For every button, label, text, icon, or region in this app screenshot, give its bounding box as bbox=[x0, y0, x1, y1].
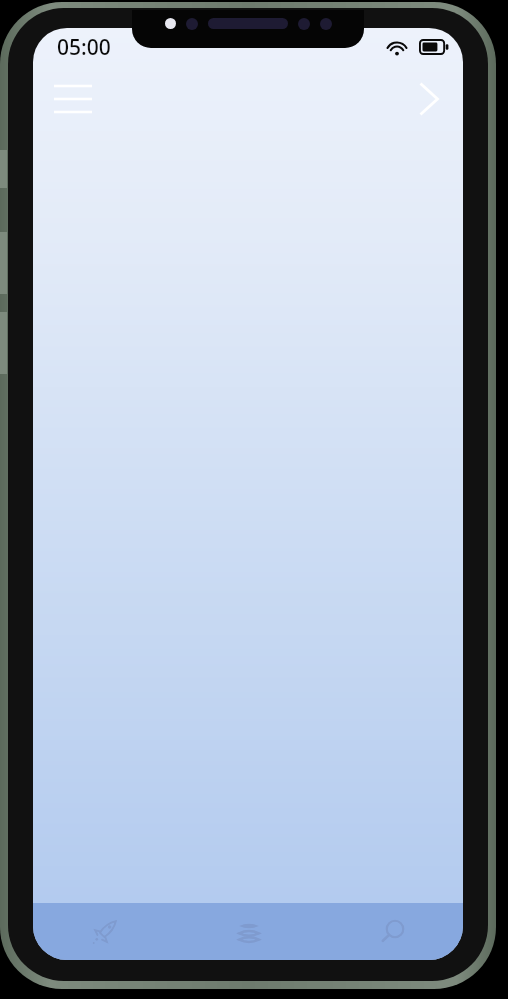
button[interactable]: Menu bbox=[45, 71, 101, 127]
button[interactable]: Discover bbox=[33, 903, 177, 960]
staticText: 05:00 bbox=[57, 33, 111, 62]
button[interactable]: Search bbox=[320, 903, 463, 960]
button[interactable]: Next bbox=[401, 71, 457, 127]
